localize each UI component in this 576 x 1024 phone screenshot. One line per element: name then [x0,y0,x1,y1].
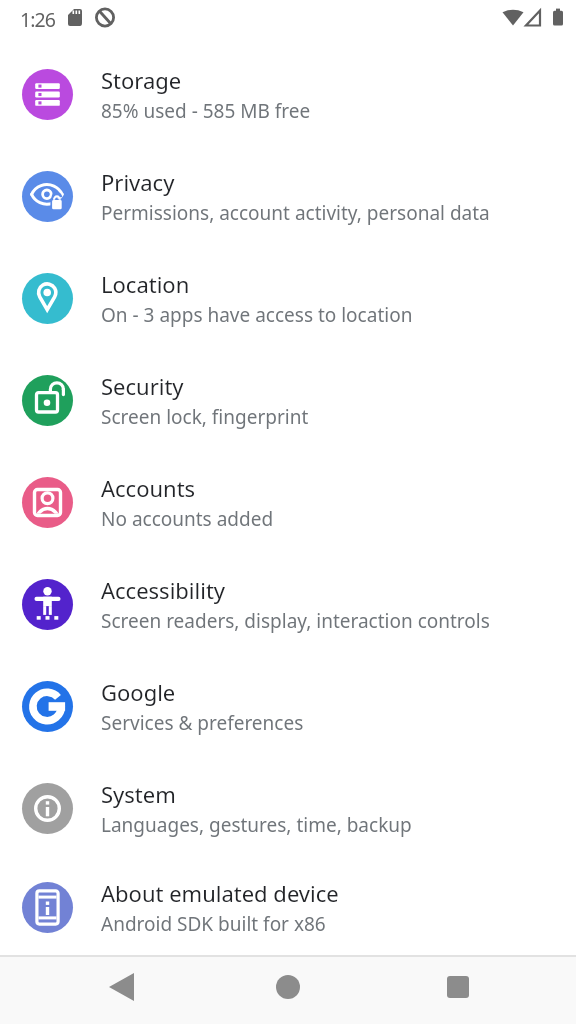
staticText: Android SDK built for x86 [101,911,326,937]
staticText: About emulated device [101,878,339,908]
button[interactable]: Accessibility [0,553,576,655]
staticText: 85% used - 585 MB free [101,98,311,124]
staticText: Google [101,677,176,707]
button[interactable] [262,963,314,1011]
staticText: Permissions, account activity, personal … [101,200,490,226]
button[interactable]: Privacy [0,145,576,247]
staticText: Privacy [101,167,175,197]
staticText: No accounts added [101,506,274,532]
staticText: Security [101,371,184,401]
staticText: Languages, gestures, time, backup [101,812,412,838]
staticText: Storage [101,65,182,95]
button[interactable]: Accounts [0,451,576,553]
staticText: System [101,779,176,809]
staticText: Accounts [101,473,196,503]
button[interactable]: About emulated device [0,859,576,955]
staticText: Screen lock, fingerprint [101,404,309,430]
button[interactable]: Location [0,247,576,349]
staticText: Location [101,269,190,299]
button[interactable]: Google [0,655,576,757]
button[interactable]: Security [0,349,576,451]
staticText: Accessibility [101,575,226,605]
staticText: On - 3 apps have access to location [101,302,413,328]
staticText: Services & preferences [101,710,304,736]
button[interactable] [95,972,147,1004]
button[interactable] [432,963,484,1011]
button[interactable]: Storage [0,43,576,145]
button[interactable]: System [0,757,576,859]
staticText: Screen readers, display, interaction con… [101,608,490,634]
staticText: 1:26 [20,6,56,33]
